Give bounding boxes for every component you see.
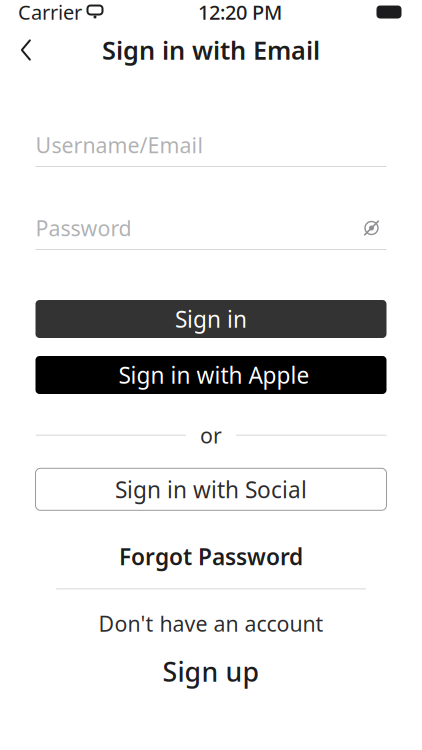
- button[interactable]: Sign in with Social: [35, 468, 386, 510]
- staticText: Sign in with Social: [115, 474, 307, 504]
- button[interactable]: Sign in: [35, 300, 386, 338]
- staticText: or: [200, 421, 222, 449]
- staticText: Username/Email: [35, 131, 203, 159]
- staticText: Sign in: [175, 304, 247, 334]
- staticText: 12:20 PM: [198, 0, 282, 25]
- staticText: Don't have an account: [98, 609, 323, 638]
- staticText: Forgot Password: [119, 541, 303, 571]
- button[interactable]: Back: [4, 28, 48, 72]
- button[interactable]: [35, 356, 386, 394]
- staticText: Password: [35, 214, 131, 242]
- button[interactable]: Forgot Password: [119, 541, 303, 571]
- button[interactable]: Sign up: [162, 654, 259, 689]
- button[interactable]: Show password: [356, 215, 386, 241]
- staticText: Sign in with Email: [102, 33, 320, 67]
- staticText: Carrier: [18, 0, 82, 25]
- staticText: Sign in with Apple: [118, 360, 309, 390]
- staticText: Sign up: [162, 654, 259, 689]
